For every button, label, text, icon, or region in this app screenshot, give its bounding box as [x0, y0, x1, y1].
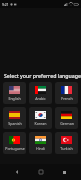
button[interactable]: Hindi	[29, 132, 52, 154]
button[interactable]: Arabic	[29, 82, 52, 104]
button[interactable]: Recent apps	[57, 165, 71, 179]
button[interactable]: Home	[34, 165, 48, 179]
button[interactable]: Spanish	[3, 107, 26, 129]
button[interactable]: Korean	[29, 107, 52, 129]
staticText: English	[8, 96, 21, 101]
staticText: Korean	[34, 121, 47, 126]
staticText: Portuguese	[5, 146, 25, 151]
button[interactable]: English	[3, 82, 26, 104]
staticText: German	[60, 121, 74, 126]
staticText: 9:21	[2, 2, 9, 7]
button[interactable]: French	[55, 82, 78, 104]
staticText: Spanish	[8, 121, 22, 126]
staticText: French	[61, 96, 73, 101]
staticText: Arabic	[35, 96, 46, 101]
staticText: Hindi	[36, 146, 45, 151]
button[interactable]: Turkish	[55, 132, 78, 154]
button[interactable]: Portuguese	[3, 132, 26, 154]
button[interactable]: Back	[10, 165, 24, 179]
button[interactable]: German	[55, 107, 78, 129]
staticText: Select your preferred language	[4, 72, 81, 79]
staticText: Turkish	[60, 146, 73, 151]
